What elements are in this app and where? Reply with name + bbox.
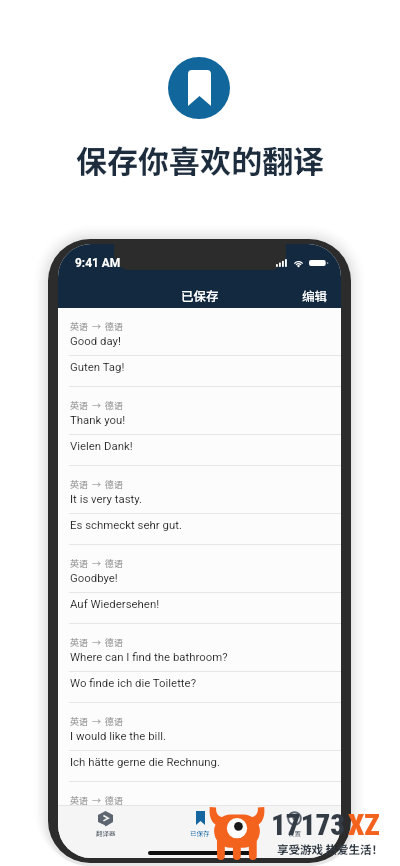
staticText: Ich hätte gerne die Rechnung. [70, 755, 221, 768]
staticText: Where can I find the bathroom? [70, 650, 228, 663]
staticText: 享受游戏 热爱生活！ [277, 841, 384, 858]
other: Saved [196, 811, 205, 825]
staticText: 英语 → 德语 [70, 715, 124, 728]
staticText: 英语 → 德语 [70, 557, 124, 570]
staticText: Guten Tag! [70, 360, 125, 373]
staticText: 已保存 [181, 286, 219, 304]
staticText: It is very tasty. [70, 492, 143, 505]
staticText: Goodbye! [70, 571, 118, 584]
staticText: Good day! [70, 334, 121, 347]
staticText: Es schmeckt sehr gut. [70, 518, 182, 531]
staticText: 英语 → 德语 [70, 478, 124, 491]
button[interactable]: 编辑 [292, 282, 341, 308]
staticText: Thank you! [70, 413, 126, 426]
staticText: 已保存 [190, 828, 210, 837]
staticText: 设置 [288, 828, 301, 837]
staticText: 英语 → 德语 [70, 399, 124, 412]
button[interactable]: 英语 → 德语 [58, 545, 341, 624]
staticText: I would like the bill. [70, 729, 166, 742]
staticText: Auf Wiedersehen! [70, 597, 160, 610]
staticText: 英语 → 德语 [70, 794, 124, 805]
button[interactable]: Settings [247, 806, 341, 842]
other: Settings [287, 811, 302, 826]
button[interactable]: 英语 → 德语 [58, 624, 341, 703]
button[interactable]: 英语 → 德语 [58, 703, 341, 782]
staticText: 翻译器 [96, 828, 116, 837]
button[interactable]: 英语 → 德语 [58, 387, 341, 466]
staticText: 英语 → 德语 [70, 636, 124, 649]
button[interactable]: Saved [153, 806, 247, 842]
staticText: XZ [348, 808, 380, 842]
staticText: Wo finde ich die Toilette? [70, 676, 197, 689]
button[interactable]: 英语 → 德语 [58, 466, 341, 545]
other: Translator [98, 811, 113, 826]
staticText: 英语 → 德语 [70, 320, 124, 333]
staticText: 17173 [271, 808, 346, 842]
button[interactable]: 英语 → 德语 [58, 782, 341, 805]
button[interactable]: 英语 → 德语 [58, 308, 341, 387]
staticText: 保存你喜欢的翻译 [76, 137, 324, 182]
button[interactable]: Translator [58, 806, 153, 842]
staticText: 9:41 AM [75, 256, 121, 270]
staticText: Vielen Dank! [70, 439, 133, 452]
